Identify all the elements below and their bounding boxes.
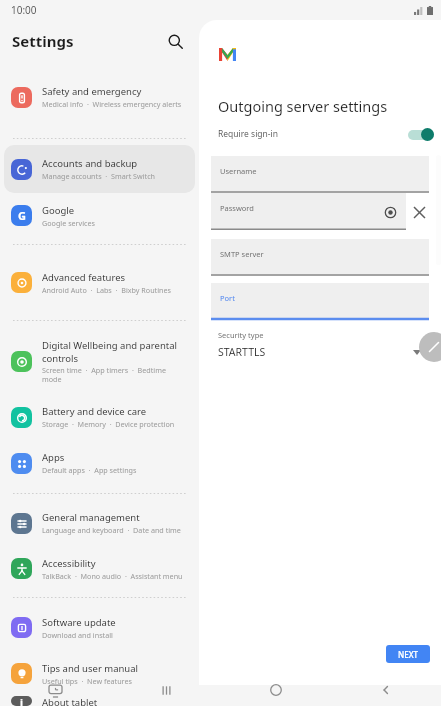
button[interactable]: Clear xyxy=(409,202,429,222)
staticText: Download and install xyxy=(42,630,113,640)
staticText: SMTP server xyxy=(220,249,264,259)
staticText: Useful tips · New features xyxy=(42,676,132,686)
button[interactable]: Search xyxy=(159,25,191,57)
staticText: Android Auto · Labs · Bixby Routines xyxy=(42,285,172,295)
staticText: Settings xyxy=(12,31,74,51)
staticText: Medical info · Wireless emergency alerts xyxy=(42,99,182,109)
staticText: Storage · Memory · Device protection xyxy=(42,419,175,429)
button[interactable]: Menu xyxy=(111,674,221,706)
staticText: TalkBack · Mono audio · Assistant menu xyxy=(42,571,183,581)
button[interactable]: Software update xyxy=(4,604,195,651)
staticText: Tips and user manual xyxy=(42,662,139,675)
button[interactable]: Show password xyxy=(379,201,401,223)
staticText: Manage accounts · Smart Switch xyxy=(42,171,156,181)
staticText: Accessibility xyxy=(42,557,96,570)
staticText: Software update xyxy=(42,616,116,629)
staticText: Username xyxy=(220,166,257,176)
button[interactable] xyxy=(211,193,406,230)
button[interactable]: G xyxy=(4,193,195,238)
button[interactable]: Accounts and backup xyxy=(4,145,195,193)
button[interactable]: Username xyxy=(211,156,429,193)
button[interactable]: NEXT xyxy=(386,645,430,663)
staticText: Security type xyxy=(218,330,264,340)
staticText: G xyxy=(18,208,26,223)
button[interactable]: Back xyxy=(331,674,441,706)
staticText: Digital Wellbeing and parental controls xyxy=(42,339,177,364)
staticText: Language and keyboard · Date and time xyxy=(42,525,181,535)
staticText: Google services xyxy=(42,218,96,228)
button[interactable]: SMTP server xyxy=(211,239,429,276)
staticText: NEXT xyxy=(398,649,419,660)
button[interactable]: Battery and device care xyxy=(4,395,195,439)
staticText: Password xyxy=(220,203,254,213)
staticText: Accounts and backup xyxy=(42,157,138,170)
button[interactable]: Safety and emergency xyxy=(4,62,195,132)
staticText: Battery and device care xyxy=(42,405,147,418)
button[interactable]: STARTTLS xyxy=(199,340,441,364)
button[interactable]: i xyxy=(4,696,195,706)
button[interactable]: Port xyxy=(211,283,429,320)
button[interactable]: Apps xyxy=(4,439,195,487)
staticText: Advanced features xyxy=(42,271,126,284)
button[interactable]: Require sign-in xyxy=(199,121,441,147)
button[interactable]: Digital Wellbeing and parental controls xyxy=(4,327,195,395)
staticText: Outgoing server settings xyxy=(218,96,388,116)
button[interactable]: Advanced features xyxy=(4,251,195,314)
staticText: Port xyxy=(220,293,235,303)
staticText: Apps xyxy=(42,451,65,464)
staticText: About tablet xyxy=(42,696,98,706)
staticText: Screen time · App timers · Bedtime mode xyxy=(42,365,166,384)
button[interactable]: General management xyxy=(4,500,195,546)
button[interactable]: Recents xyxy=(0,674,111,706)
button[interactable]: Accessibility xyxy=(4,546,195,591)
staticText: i xyxy=(20,696,23,706)
button[interactable]: Home xyxy=(221,674,331,706)
staticText: Require sign-in xyxy=(218,128,279,140)
button[interactable]: Tips and user manual xyxy=(4,651,195,696)
button[interactable]: Edit xyxy=(419,332,441,362)
staticText: STARTTLS xyxy=(218,345,266,359)
staticText: 10:00 xyxy=(11,3,37,17)
staticText: Google xyxy=(42,204,75,217)
staticText: General management xyxy=(42,511,140,524)
staticText: Default apps · App settings xyxy=(42,465,137,475)
staticText: Safety and emergency xyxy=(42,85,142,98)
